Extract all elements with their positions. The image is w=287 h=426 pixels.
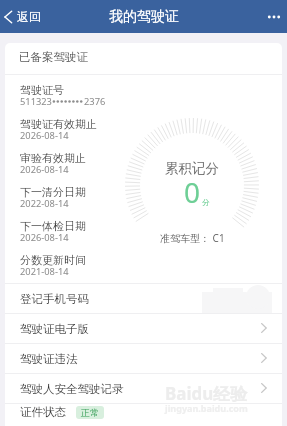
- button[interactable]: More options: [261, 5, 287, 29]
- staticText: 返回: [17, 9, 41, 24]
- staticText: 2026-08-14: [20, 231, 69, 244]
- staticText: 登记手机号码: [20, 292, 261, 306]
- staticText: 正常: [81, 407, 99, 418]
- button[interactable]: 驾驶证违法: [5, 344, 282, 373]
- staticText: 2026-08-14: [20, 129, 69, 142]
- staticText: 2022-08-14: [20, 197, 69, 210]
- staticText: 审验有效期止: [20, 151, 86, 165]
- staticText: 分: [202, 198, 210, 207]
- staticText: 驾驶证号: [20, 83, 64, 97]
- staticText: 驾驶证电子版: [20, 322, 261, 336]
- staticText: 我的驾驶证: [109, 8, 179, 26]
- button[interactable]: 驾驶证电子版: [5, 314, 282, 343]
- staticText: 证件状态: [20, 405, 66, 419]
- staticText: 准驾车型： C1: [160, 231, 225, 245]
- staticText: 511323: [20, 95, 52, 108]
- staticText: 0: [184, 173, 201, 211]
- staticText: 2021-08-14: [20, 265, 69, 278]
- button[interactable]: 证件状态: [5, 404, 282, 426]
- staticText: 下一清分日期: [20, 185, 86, 199]
- staticText: 分数更新时间: [20, 253, 86, 267]
- staticText: Baidu经验: [165, 382, 248, 405]
- button[interactable]: 驾驶人安全驾驶记录: [5, 374, 282, 403]
- staticText: jingyan.baidu.com: [165, 402, 248, 414]
- staticText: 2026-08-14: [20, 163, 69, 176]
- button[interactable]: 登记手机号码: [5, 284, 282, 313]
- staticText: 已备案驾驶证: [19, 50, 88, 64]
- staticText: 2376: [84, 95, 106, 108]
- staticText: 累积记分: [165, 160, 219, 177]
- staticText: 下一体检日期: [20, 219, 86, 233]
- staticText: 驾驶人安全驾驶记录: [20, 382, 261, 396]
- staticText: 驾驶证有效期止: [20, 117, 97, 131]
- staticText: 驾驶证违法: [20, 352, 261, 366]
- button[interactable]: 返回: [0, 5, 47, 28]
